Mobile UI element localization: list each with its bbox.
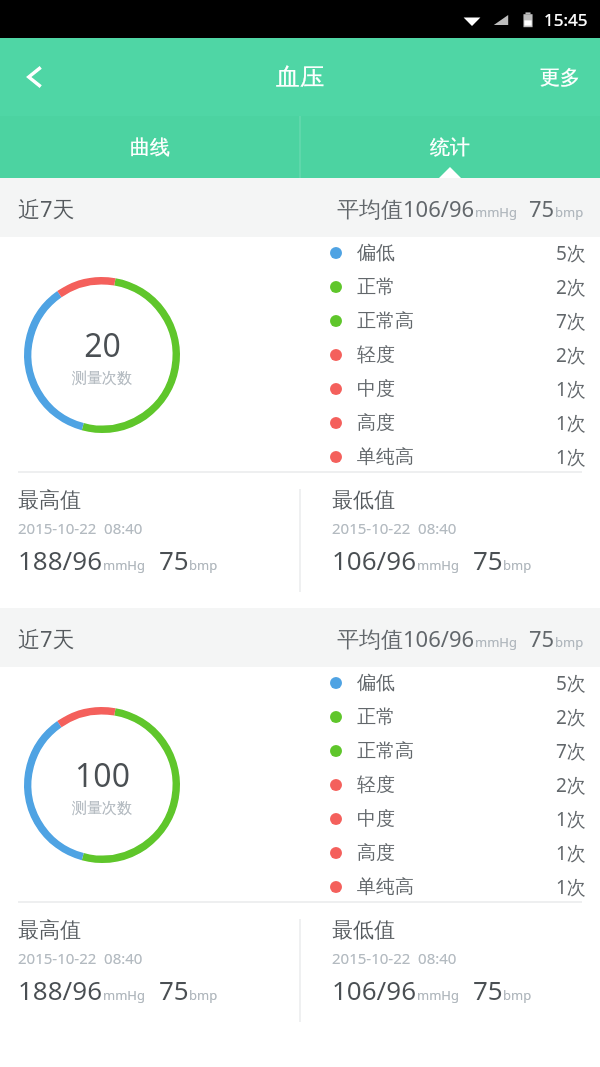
staticText: 100 — [75, 753, 130, 797]
staticText: mmHg — [475, 203, 517, 221]
staticText: 正常 — [357, 705, 395, 729]
staticText: 平均值106/96 — [337, 193, 475, 223]
staticText: 1次 — [556, 376, 586, 402]
staticText: 正常高 — [357, 739, 414, 763]
staticText: 轻度 — [357, 773, 395, 797]
button[interactable]: 轻度 — [330, 342, 586, 368]
staticText: 2015-10-22 08:40 — [18, 518, 143, 538]
staticText: 高度 — [357, 411, 395, 435]
button[interactable]: 单纯高 — [330, 874, 586, 900]
button[interactable]: 统计 — [300, 116, 600, 178]
staticText: 75 — [159, 542, 189, 577]
staticText: mmHg — [417, 986, 459, 1004]
button[interactable]: 正常高 — [330, 738, 586, 764]
staticText: mmHg — [103, 986, 145, 1004]
staticText: 188/96 — [18, 542, 103, 577]
staticText: 1次 — [556, 444, 586, 470]
staticText: 1次 — [556, 806, 586, 832]
staticText: bmp — [189, 556, 218, 574]
staticText: 近7天 — [18, 193, 75, 223]
staticText: 5次 — [556, 670, 586, 696]
staticText: 统计 — [430, 135, 470, 160]
staticText: 75 — [473, 542, 503, 577]
staticText: 偏低 — [357, 671, 395, 695]
staticText: 偏低 — [357, 241, 395, 265]
button[interactable]: 中度 — [330, 806, 586, 832]
staticText: 106/96 — [332, 542, 417, 577]
button[interactable]: 高度 — [330, 410, 586, 436]
button[interactable]: Back — [0, 38, 70, 116]
button[interactable]: 高度 — [330, 840, 586, 866]
button[interactable]: 更多 — [520, 38, 600, 116]
button[interactable]: 单纯高 — [330, 444, 586, 470]
staticText: 中度 — [357, 377, 395, 401]
staticText: 15:45 — [544, 8, 588, 31]
staticText: 75 — [529, 193, 555, 223]
staticText: bmp — [503, 556, 532, 574]
staticText: 高度 — [357, 841, 395, 865]
staticText: 2015-10-22 08:40 — [332, 518, 457, 538]
staticText: 近7天 — [18, 623, 75, 653]
staticText: 75 — [159, 972, 189, 1007]
button[interactable]: 偏低 — [330, 670, 586, 696]
staticText: 75 — [473, 972, 503, 1007]
button[interactable]: 轻度 — [330, 772, 586, 798]
button[interactable]: 正常高 — [330, 308, 586, 334]
staticText: 2次 — [556, 772, 586, 798]
staticText: 最低值 — [332, 917, 395, 943]
staticText: 单纯高 — [357, 445, 414, 469]
staticText: mmHg — [103, 556, 145, 574]
button[interactable]: 曲线 — [0, 116, 300, 178]
staticText: 血压 — [276, 62, 324, 92]
button[interactable]: 中度 — [330, 376, 586, 402]
staticText: 更多 — [540, 65, 580, 90]
staticText: 中度 — [357, 807, 395, 831]
staticText: mmHg — [417, 556, 459, 574]
staticText: bmp — [503, 986, 532, 1004]
staticText: 2015-10-22 08:40 — [332, 948, 457, 968]
staticText: 2次 — [556, 274, 586, 300]
button[interactable]: 正常 — [330, 274, 586, 300]
staticText: bmp — [189, 986, 218, 1004]
staticText: 轻度 — [357, 343, 395, 367]
staticText: 平均值106/96 — [337, 623, 475, 653]
staticText: 7次 — [556, 308, 586, 334]
staticText: 最低值 — [332, 487, 395, 513]
staticText: 2次 — [556, 342, 586, 368]
staticText: 2次 — [556, 704, 586, 730]
staticText: 1次 — [556, 874, 586, 900]
staticText: 单纯高 — [357, 875, 414, 899]
staticText: 1次 — [556, 410, 586, 436]
staticText: 1次 — [556, 840, 586, 866]
staticText: 最高值 — [18, 487, 81, 513]
staticText: 正常高 — [357, 309, 414, 333]
staticText: 106/96 — [332, 972, 417, 1007]
staticText: 5次 — [556, 240, 586, 266]
staticText: 曲线 — [130, 135, 170, 160]
staticText: 测量次数 — [72, 799, 132, 818]
staticText: 188/96 — [18, 972, 103, 1007]
staticText: 7次 — [556, 738, 586, 764]
staticText: 2015-10-22 08:40 — [18, 948, 143, 968]
staticText: 20 — [84, 323, 121, 367]
staticText: mmHg — [475, 633, 517, 651]
staticText: 测量次数 — [72, 369, 132, 388]
button[interactable]: 偏低 — [330, 240, 586, 266]
staticText: 正常 — [357, 275, 395, 299]
button[interactable]: 正常 — [330, 704, 586, 730]
staticText: 75 — [529, 623, 555, 653]
staticText: bmp — [555, 203, 584, 221]
staticText: 最高值 — [18, 917, 81, 943]
staticText: bmp — [555, 633, 584, 651]
